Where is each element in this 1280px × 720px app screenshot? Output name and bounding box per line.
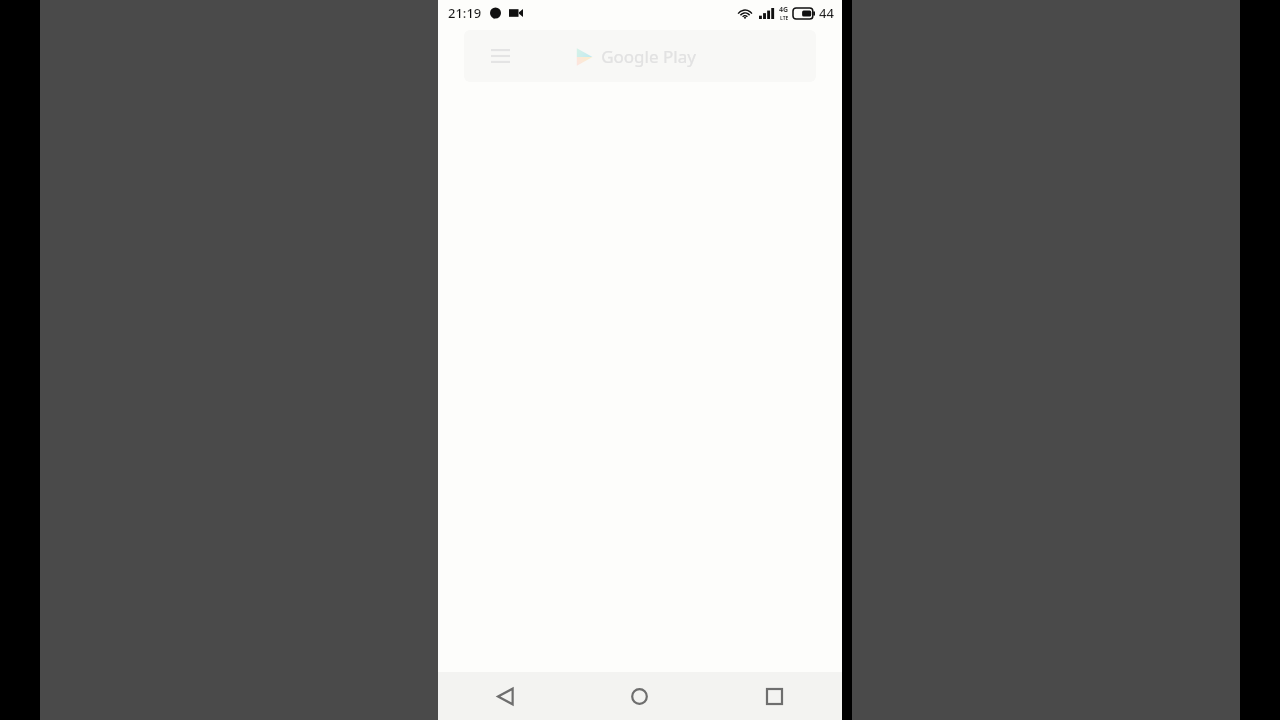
button[interactable]: Recent apps <box>707 672 842 720</box>
button[interactable]: Back <box>438 672 572 720</box>
button[interactable]: Home <box>572 672 707 720</box>
staticText: Google Play <box>601 45 696 68</box>
staticText: 4G <box>779 5 789 15</box>
button[interactable]: Open navigation menu <box>484 40 516 72</box>
button[interactable]: Open navigation menu <box>464 30 816 82</box>
staticText: LTE <box>780 15 789 22</box>
staticText: 21:19 <box>448 4 482 22</box>
staticText: 44 <box>819 4 834 22</box>
